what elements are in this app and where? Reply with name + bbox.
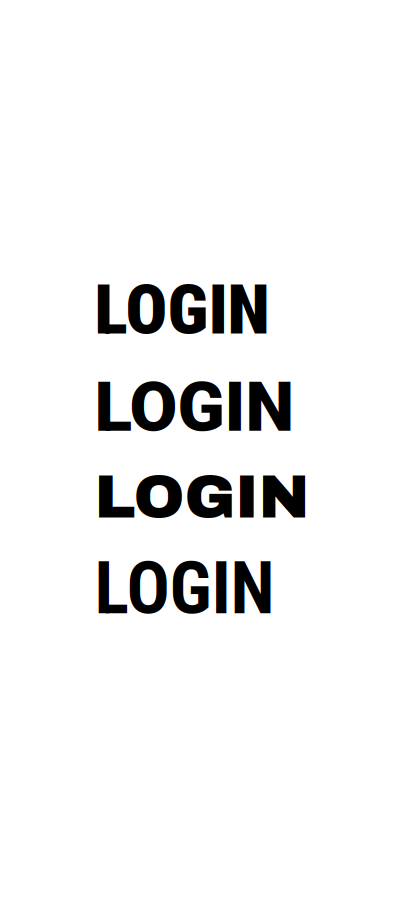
staticText: LOGIN <box>94 546 274 631</box>
staticText: LOGIN <box>94 269 269 350</box>
staticText: LOGIN <box>94 464 309 530</box>
staticText: LOGIN <box>94 366 294 448</box>
